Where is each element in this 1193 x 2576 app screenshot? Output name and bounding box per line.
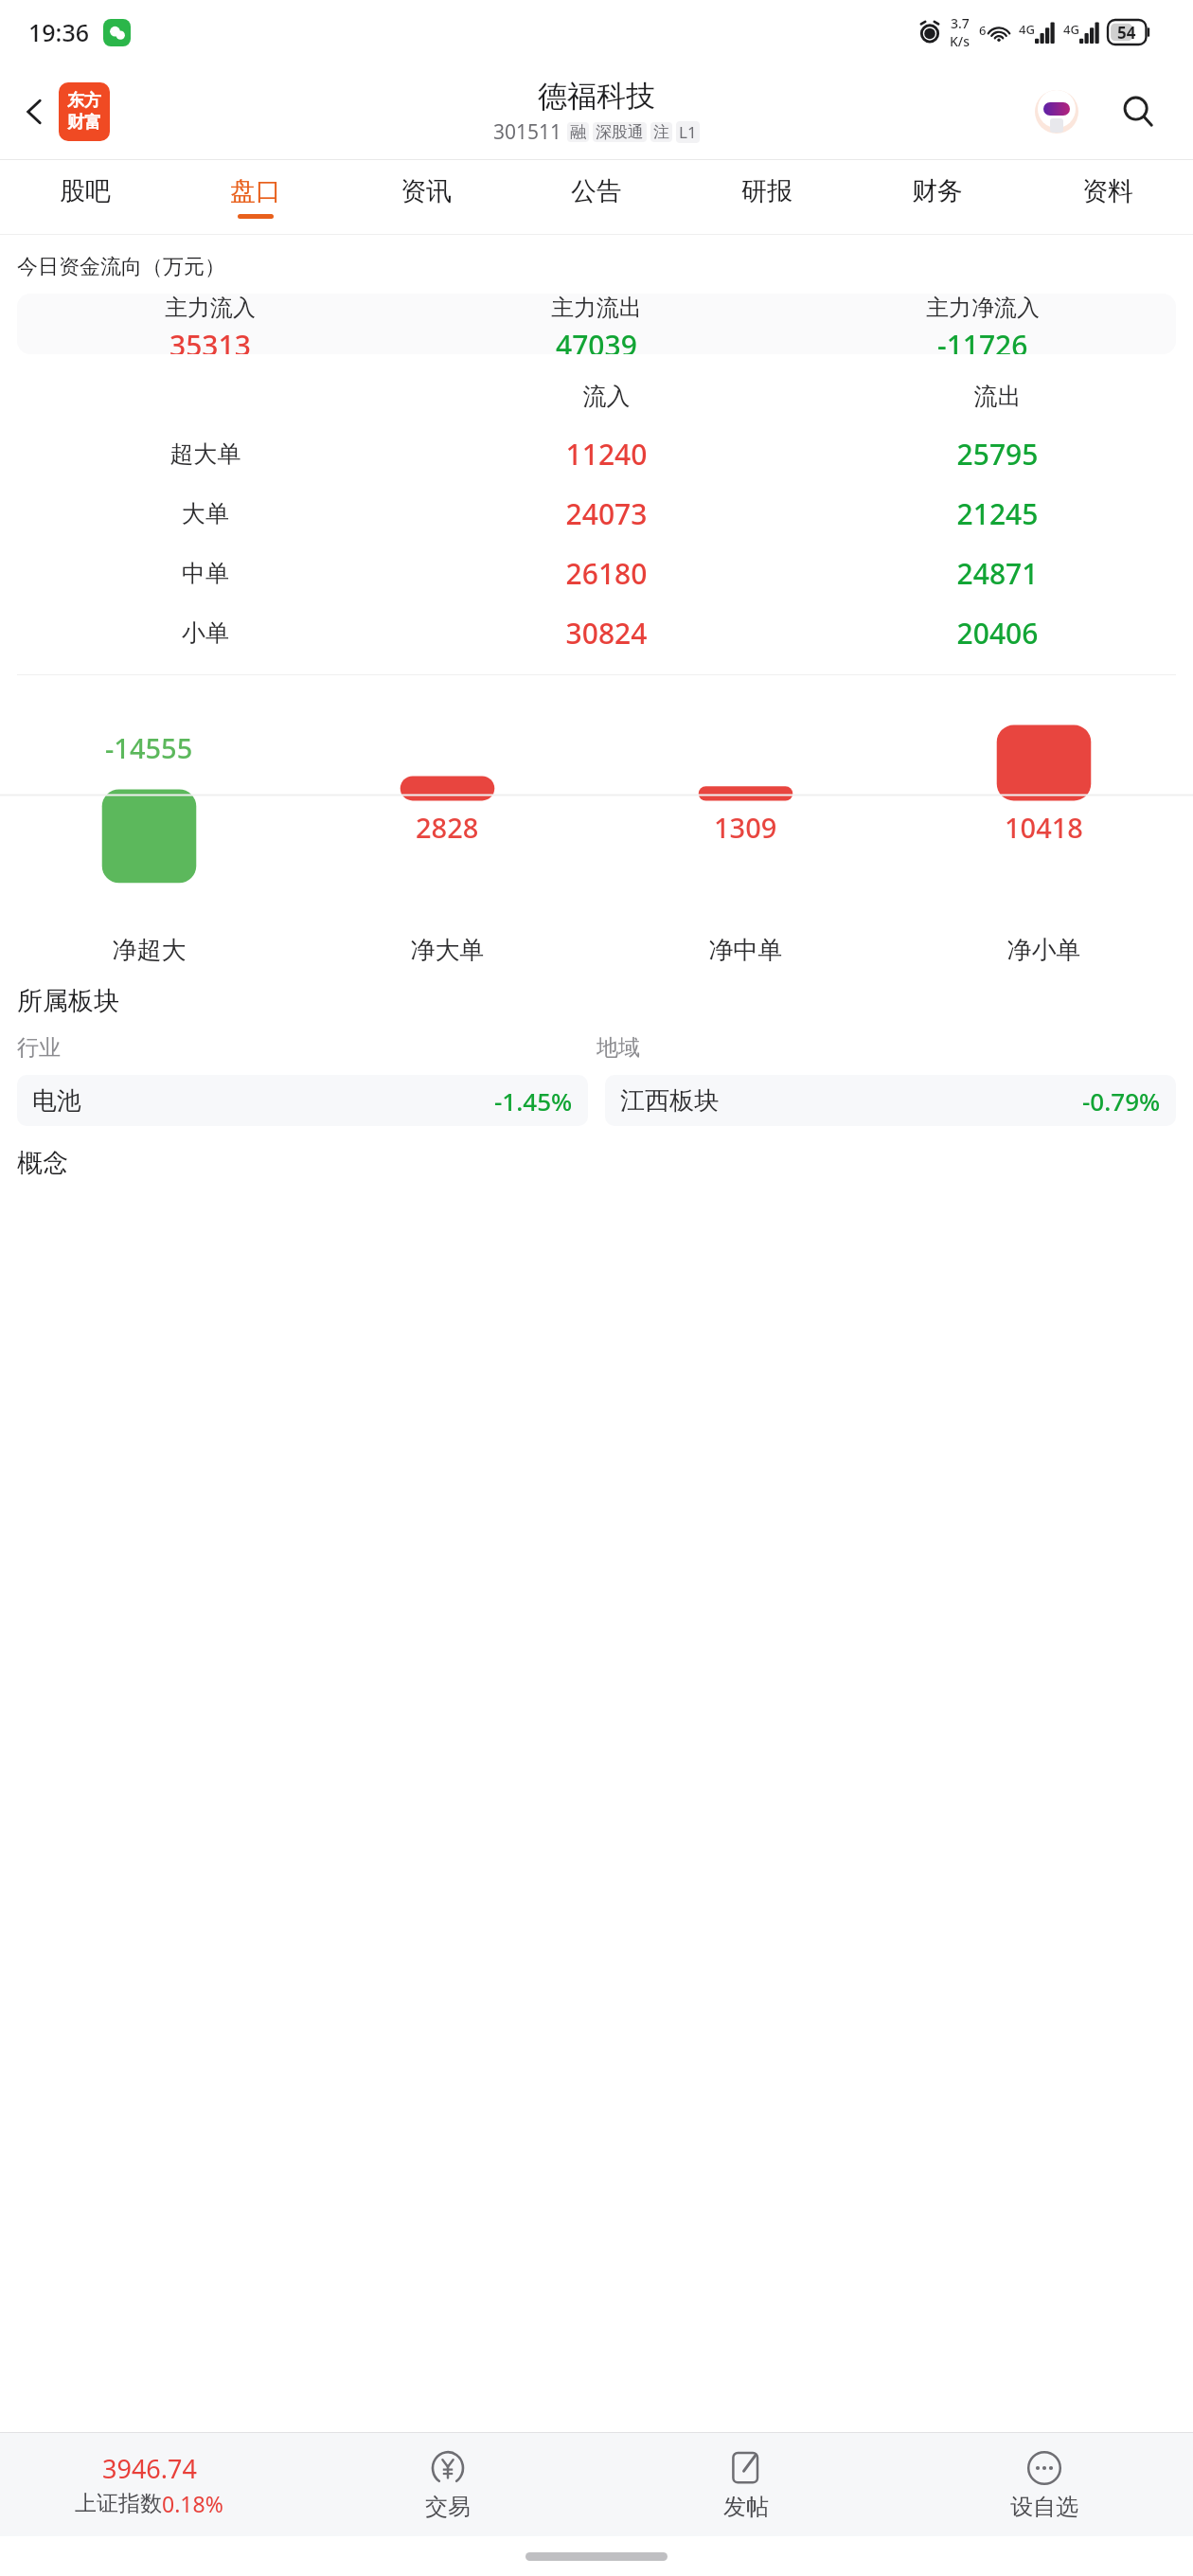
staticText: 1309 [714, 809, 777, 846]
button[interactable]: 超大单 [0, 424, 1193, 484]
button[interactable]: 3946.74 [0, 2451, 298, 2518]
staticText: 4G [1019, 21, 1035, 38]
button[interactable]: 小单 [0, 603, 1193, 663]
staticText: 东方 [67, 90, 101, 112]
staticText: 10418 [1005, 809, 1083, 846]
staticText: 26180 [411, 554, 802, 593]
button[interactable]: AI助手 [1030, 85, 1083, 138]
button[interactable]: 江西板块 [605, 1075, 1176, 1126]
staticText: 融 [570, 122, 586, 142]
staticText: 注 [653, 122, 669, 142]
staticText: 大单 [0, 499, 411, 528]
button[interactable]: 交易 [298, 2433, 596, 2536]
staticText: 财务 [912, 175, 963, 207]
staticText: 研报 [741, 175, 792, 207]
staticText: 概念 [17, 1147, 68, 1179]
button[interactable]: 大单 [0, 484, 1193, 544]
staticText: 中单 [0, 559, 411, 588]
staticText: 交易 [425, 2493, 471, 2521]
staticText: 3.7 [951, 14, 970, 32]
staticText: 24871 [802, 554, 1193, 593]
staticText: 江西板块 [620, 1085, 719, 1117]
button[interactable]: 中单 [0, 544, 1193, 603]
button[interactable]: 设自选 [895, 2433, 1193, 2536]
staticText: 20406 [802, 614, 1193, 653]
staticText: 公告 [571, 175, 622, 207]
button[interactable]: 东方财富 [59, 82, 110, 141]
staticText: 30824 [411, 614, 802, 653]
staticText: 6 [979, 22, 987, 39]
button[interactable]: 资讯 [341, 160, 511, 234]
staticText: K/s [950, 32, 970, 50]
staticText: 资讯 [401, 175, 452, 207]
staticText: 4G [1063, 21, 1079, 38]
staticText: 电池 [32, 1085, 81, 1117]
staticText: 所属板块 [17, 985, 119, 1017]
button[interactable]: 资料 [1023, 160, 1193, 234]
button[interactable]: 主力流入 [17, 294, 1176, 354]
staticText: 深股通 [596, 122, 644, 142]
staticText: 上证指数 [75, 2490, 162, 2517]
staticText: 主力净流入 [926, 294, 1040, 322]
staticText: 净中单 [596, 935, 895, 966]
staticText: 47039 [556, 326, 637, 354]
staticText: 财富 [67, 112, 101, 134]
staticText: 净小单 [895, 935, 1193, 966]
button[interactable]: 股吧 [0, 160, 170, 234]
staticText: 35313 [169, 326, 251, 354]
staticText: 主力流出 [551, 294, 642, 322]
staticText: -0.79% [1082, 1084, 1161, 1118]
staticText: -14555 [105, 729, 193, 766]
staticText: -1.45% [494, 1084, 573, 1118]
staticText: 主力流入 [165, 294, 256, 322]
staticText: 设自选 [1010, 2493, 1078, 2521]
staticText: 资料 [1082, 175, 1133, 207]
staticText: 25795 [802, 435, 1193, 474]
staticText: 19:36 [28, 16, 90, 48]
staticText: 行业 [17, 1034, 596, 1062]
staticText: 盘口 [230, 175, 281, 207]
staticText: 小单 [0, 618, 411, 648]
staticText: 流出 [802, 382, 1193, 411]
button[interactable]: 公告 [511, 160, 682, 234]
staticText: 地域 [596, 1034, 1176, 1062]
button[interactable]: 研报 [682, 160, 852, 234]
staticText: 2828 [416, 809, 479, 846]
button[interactable]: 电池 [17, 1075, 588, 1126]
staticText: 股吧 [60, 175, 111, 207]
staticText: 301511 [493, 118, 562, 146]
staticText: 11240 [411, 435, 802, 474]
button[interactable]: 搜索 [1108, 81, 1168, 142]
staticText: L1 [679, 121, 697, 143]
staticText: 净大单 [298, 935, 596, 966]
staticText: 流入 [411, 382, 802, 411]
staticText: 3946.74 [102, 2451, 197, 2486]
staticText: 发帖 [723, 2493, 769, 2521]
button[interactable]: 发帖 [596, 2433, 895, 2536]
button[interactable]: 财务 [852, 160, 1023, 234]
staticText: 德福科技 [538, 78, 655, 115]
staticText: 54 [1117, 22, 1136, 44]
staticText: 今日资金流向（万元） [17, 254, 225, 280]
staticText: 超大单 [0, 439, 411, 469]
button[interactable]: 返回 [9, 86, 61, 137]
staticText: -11726 [937, 326, 1028, 354]
button[interactable]: 盘口 [170, 160, 341, 234]
staticText: 净超大 [0, 935, 298, 966]
staticText: 24073 [411, 494, 802, 533]
staticText: 0.18% [162, 2489, 223, 2518]
staticText: 21245 [802, 494, 1193, 533]
